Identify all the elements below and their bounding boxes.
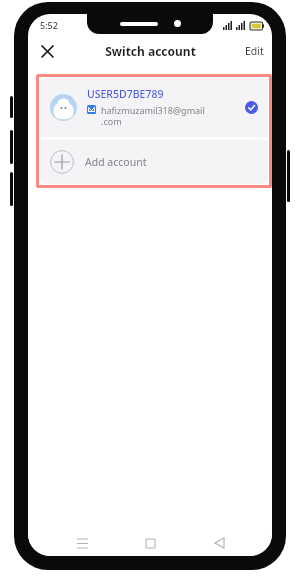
other: Selected account xyxy=(245,101,258,114)
button[interactable]: Recent apps xyxy=(67,530,97,556)
staticText: 5:52 xyxy=(40,19,58,31)
staticText: Add account xyxy=(85,155,147,169)
staticText: USER5D7BE789 xyxy=(87,87,164,101)
button[interactable]: Edit xyxy=(237,40,272,62)
button[interactable]: Home xyxy=(135,530,165,556)
staticText: Edit xyxy=(245,44,264,58)
button[interactable]: Add account xyxy=(40,140,268,184)
button[interactable]: Close xyxy=(34,38,60,64)
staticText: Switch account xyxy=(105,43,196,59)
button[interactable]: USER5D7BE789 xyxy=(40,78,268,137)
button[interactable]: Back xyxy=(204,530,234,556)
staticText: hafizmuzamil318@gmail .com xyxy=(101,104,205,128)
